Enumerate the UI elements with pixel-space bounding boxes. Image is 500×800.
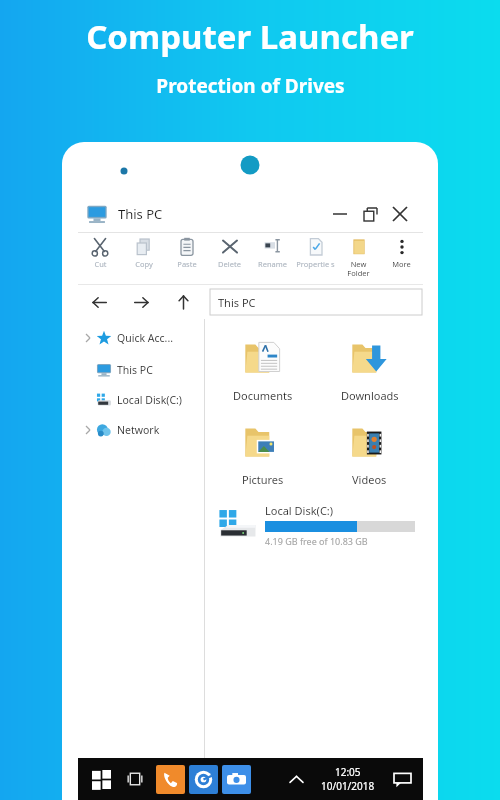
staticText: Copy: [135, 259, 153, 269]
button[interactable]: Cut: [78, 233, 122, 285]
button[interactable]: Task View: [118, 762, 152, 796]
staticText: Protection of Drives: [156, 73, 345, 99]
staticText: Network: [117, 423, 160, 437]
staticText: This PC: [218, 295, 256, 310]
staticText: This PC: [117, 363, 153, 377]
button[interactable]: Network: [78, 419, 204, 441]
staticText: Pictures: [242, 472, 284, 487]
button[interactable]: Downloads: [316, 331, 423, 405]
button[interactable]: Show hidden icons: [281, 764, 311, 794]
staticText: Propertie s: [296, 259, 335, 269]
staticText: New Folder: [347, 259, 370, 278]
button[interactable]: Minimize: [325, 199, 355, 229]
staticText: Local Disk(C:): [265, 503, 334, 518]
button[interactable]: Restore: [355, 199, 385, 229]
button[interactable]: Browser: [189, 765, 218, 794]
staticText: Videos: [352, 472, 387, 487]
button[interactable]: Documents: [209, 331, 316, 405]
staticText: Paste: [177, 259, 197, 269]
staticText: Cut: [94, 259, 107, 269]
button[interactable]: Rename: [251, 233, 294, 285]
staticText: This PC: [118, 205, 163, 223]
staticText: 12:05: [335, 765, 361, 779]
staticText: 10/01/2018: [321, 779, 375, 793]
button[interactable]: Videos: [316, 415, 423, 489]
staticText: Documents: [233, 388, 293, 403]
button[interactable]: This PC: [210, 289, 422, 315]
button[interactable]: New Folder: [337, 233, 380, 285]
button[interactable]: Paste: [165, 233, 208, 285]
staticText: Computer Launcher: [86, 14, 414, 59]
button[interactable]: Start: [84, 762, 118, 796]
staticText: More: [392, 259, 411, 269]
button[interactable]: Local Disk(C:): [209, 503, 423, 547]
staticText: 4.19 GB free of 10.83 GB: [265, 535, 368, 547]
button[interactable]: Delete: [208, 233, 251, 285]
button[interactable]: This PC: [78, 359, 204, 381]
staticText: Downloads: [341, 388, 399, 403]
button[interactable]: 12:05: [319, 765, 377, 793]
button[interactable]: Up: [162, 285, 204, 319]
button[interactable]: Copy: [122, 233, 165, 285]
button[interactable]: Camera: [222, 765, 251, 794]
button[interactable]: Back: [78, 285, 120, 319]
button[interactable]: Pictures: [209, 415, 316, 489]
button[interactable]: Propertie s: [294, 233, 337, 285]
button[interactable]: Notifications: [387, 764, 417, 794]
button[interactable]: More: [380, 233, 423, 285]
button[interactable]: Local Disk(C:): [78, 389, 204, 411]
button[interactable]: Forward: [120, 285, 162, 319]
staticText: Delete: [218, 259, 241, 269]
button[interactable]: Close: [385, 199, 415, 229]
button[interactable]: Phone: [156, 765, 185, 794]
staticText: Quick Acc...: [117, 331, 174, 345]
staticText: Rename: [258, 259, 287, 269]
staticText: Local Disk(C:): [117, 393, 182, 407]
button[interactable]: Quick Acc...: [78, 327, 204, 349]
